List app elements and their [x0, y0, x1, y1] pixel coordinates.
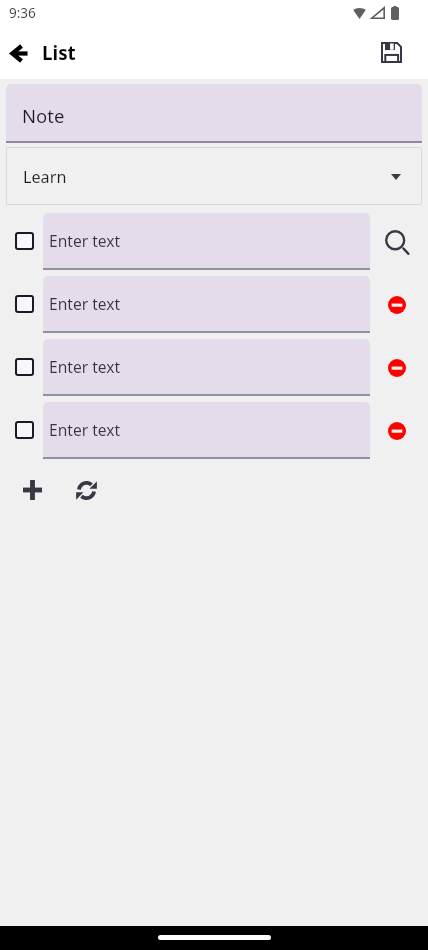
staticText: Enter text [49, 230, 121, 251]
button[interactable]: Add item [16, 474, 48, 506]
staticText: Note [22, 103, 65, 128]
staticText: Learn [23, 166, 67, 188]
button[interactable]: Enter text [43, 402, 370, 457]
button[interactable]: Enter text [43, 339, 370, 394]
button[interactable]: Search [370, 213, 428, 269]
button[interactable]: Enter text [43, 213, 370, 268]
button[interactable]: Enter text [43, 276, 370, 331]
staticText: Enter text [49, 293, 121, 314]
button[interactable]: Select item [7, 213, 41, 269]
staticText: Enter text [49, 356, 121, 377]
staticText: 9:36 [9, 4, 36, 22]
button[interactable]: Remove [370, 402, 428, 458]
button[interactable]: Learn [6, 147, 422, 205]
button[interactable]: Note [6, 84, 422, 141]
button[interactable]: Save [375, 36, 407, 68]
button[interactable]: Back [3, 37, 35, 69]
staticText: List [42, 40, 76, 66]
button[interactable]: Select item [7, 402, 41, 458]
button[interactable]: Remove [370, 276, 428, 332]
button[interactable]: Select item [7, 276, 41, 332]
button[interactable]: Refresh [70, 474, 102, 506]
button[interactable]: Remove [370, 339, 428, 395]
staticText: Enter text [49, 419, 121, 440]
button[interactable]: Select item [7, 339, 41, 395]
